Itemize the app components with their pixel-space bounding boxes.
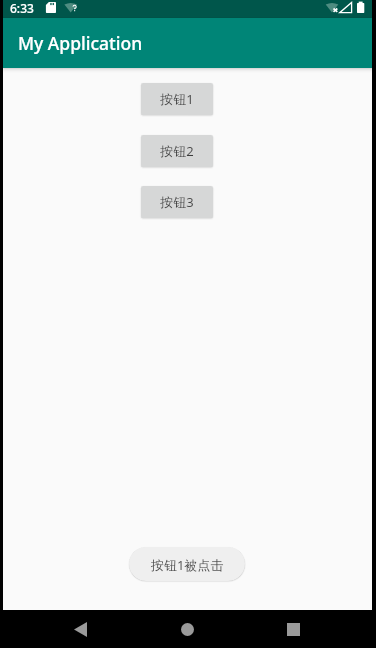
staticText: 按钮2 (160, 142, 194, 160)
button[interactable]: 按钮2 (141, 135, 213, 167)
staticText: My Application (18, 31, 143, 55)
staticText: 按钮1 (160, 90, 194, 108)
button[interactable]: 按钮1 (141, 83, 213, 115)
staticText: 6:33 (10, 0, 34, 16)
button[interactable]: Back (56, 610, 104, 648)
button[interactable]: Recents (269, 610, 317, 648)
button[interactable]: 按钮3 (141, 186, 213, 218)
staticText: 按钮3 (160, 193, 194, 211)
button[interactable]: Home (163, 610, 211, 648)
staticText: 按钮1被点击 (151, 556, 224, 574)
